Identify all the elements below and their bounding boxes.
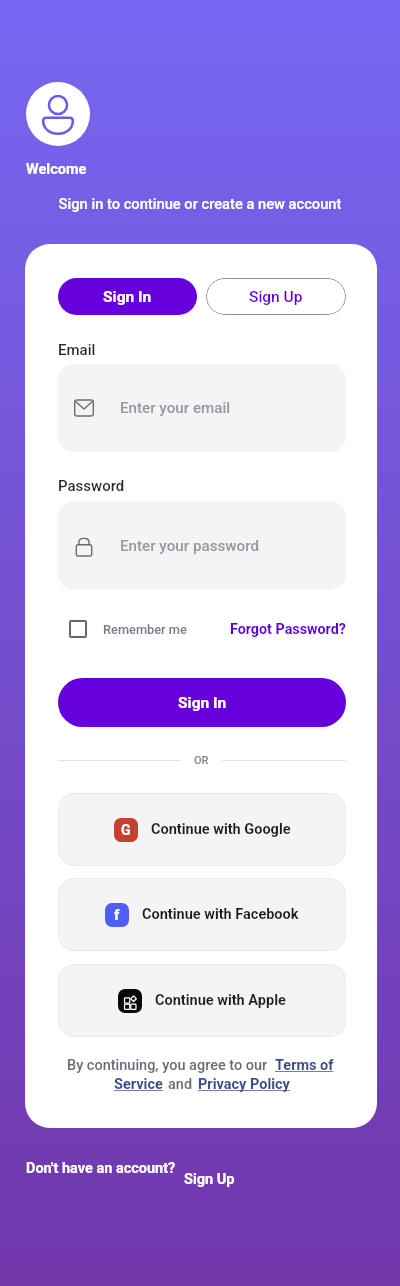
button[interactable]: Remember me bbox=[58, 620, 187, 638]
staticText: Sign Up bbox=[249, 288, 303, 306]
button[interactable]: Password bbox=[58, 501, 346, 590]
staticText: G bbox=[121, 822, 131, 838]
button[interactable]: Sign In bbox=[58, 678, 346, 727]
staticText: Continue with Facebook bbox=[142, 906, 299, 923]
staticText: f bbox=[114, 906, 120, 924]
button[interactable]: G bbox=[58, 793, 346, 866]
staticText: Sign In bbox=[103, 288, 152, 306]
staticText: Remember me bbox=[103, 622, 187, 637]
staticText: By continuing, you agree to our bbox=[67, 1057, 268, 1074]
button[interactable]: Terms of bbox=[275, 1057, 338, 1074]
button[interactable]: f bbox=[58, 878, 346, 951]
staticText: Don't have an account? bbox=[26, 1160, 176, 1177]
staticText: OR bbox=[194, 754, 209, 767]
staticText: Welcome bbox=[26, 161, 87, 178]
button[interactable]: Sign In bbox=[58, 278, 197, 315]
button[interactable]: Email bbox=[58, 364, 346, 452]
staticText: Enter your password bbox=[120, 537, 259, 555]
staticText: Sign In bbox=[178, 694, 227, 712]
other: Password bbox=[74, 536, 94, 556]
staticText: Continue with Google bbox=[151, 821, 291, 838]
other: Email bbox=[74, 398, 94, 418]
staticText: and bbox=[168, 1076, 193, 1093]
button[interactable]: Sign Up bbox=[206, 278, 346, 315]
staticText: Email bbox=[58, 341, 96, 359]
staticText: Enter your email bbox=[120, 399, 231, 417]
button[interactable]: Forgot Password? bbox=[230, 621, 346, 638]
button[interactable]: Service bbox=[114, 1076, 163, 1093]
staticText: Password bbox=[58, 477, 125, 495]
staticText: Sign in to continue or create a new acco… bbox=[0, 195, 400, 212]
button[interactable]: Continue with Apple bbox=[58, 964, 346, 1037]
button[interactable]: Sign Up bbox=[184, 1171, 235, 1188]
staticText: Continue with Apple bbox=[155, 992, 286, 1009]
button[interactable]: Privacy Policy bbox=[198, 1076, 290, 1093]
